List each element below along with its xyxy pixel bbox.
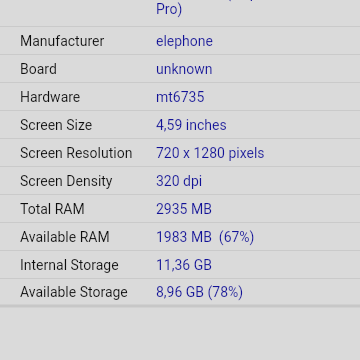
staticText: Screen Size bbox=[20, 117, 93, 133]
staticText: Board bbox=[20, 61, 57, 77]
button[interactable]: Available RAM bbox=[0, 223, 360, 250]
button[interactable]: Internal Storage bbox=[0, 251, 360, 278]
staticText: Manufacturer bbox=[20, 33, 105, 49]
staticText: 320 dpi bbox=[156, 173, 203, 189]
staticText: Internal Storage bbox=[20, 257, 119, 273]
button[interactable]: Manufacturer bbox=[0, 27, 360, 54]
staticText: 11,36 GB bbox=[156, 257, 212, 273]
staticText: 2935 MB bbox=[156, 201, 212, 217]
button[interactable]: Model bbox=[0, 0, 360, 26]
staticText: 4,59 inches bbox=[156, 117, 227, 133]
staticText: mt6735 bbox=[156, 89, 205, 105]
button[interactable]: Hardware bbox=[0, 83, 360, 110]
staticText: unknown bbox=[156, 61, 213, 77]
button[interactable]: Available Storage bbox=[0, 279, 360, 304]
staticText: Hardware bbox=[20, 89, 81, 105]
staticText: 720 x 1280 pixels bbox=[156, 145, 265, 161]
button[interactable]: Screen Density bbox=[0, 167, 360, 194]
button[interactable]: Board bbox=[0, 55, 360, 82]
button[interactable]: Total RAM bbox=[0, 195, 360, 222]
staticText: Screen Resolution bbox=[20, 145, 133, 161]
staticText: 1983 MB (67%) bbox=[156, 229, 255, 245]
staticText: Available Storage bbox=[20, 284, 128, 300]
staticText: Screen Density bbox=[20, 173, 113, 189]
staticText: Total RAM bbox=[20, 201, 85, 217]
button[interactable]: Screen Size bbox=[0, 111, 360, 138]
staticText: 8,96 GB (78%) bbox=[156, 284, 244, 300]
staticText: elephone bbox=[156, 33, 213, 49]
staticText: P9000 Lite (Elephone P9000 Pro) bbox=[156, 0, 333, 17]
staticText: Available RAM bbox=[20, 229, 110, 245]
button[interactable]: Screen Resolution bbox=[0, 139, 360, 166]
